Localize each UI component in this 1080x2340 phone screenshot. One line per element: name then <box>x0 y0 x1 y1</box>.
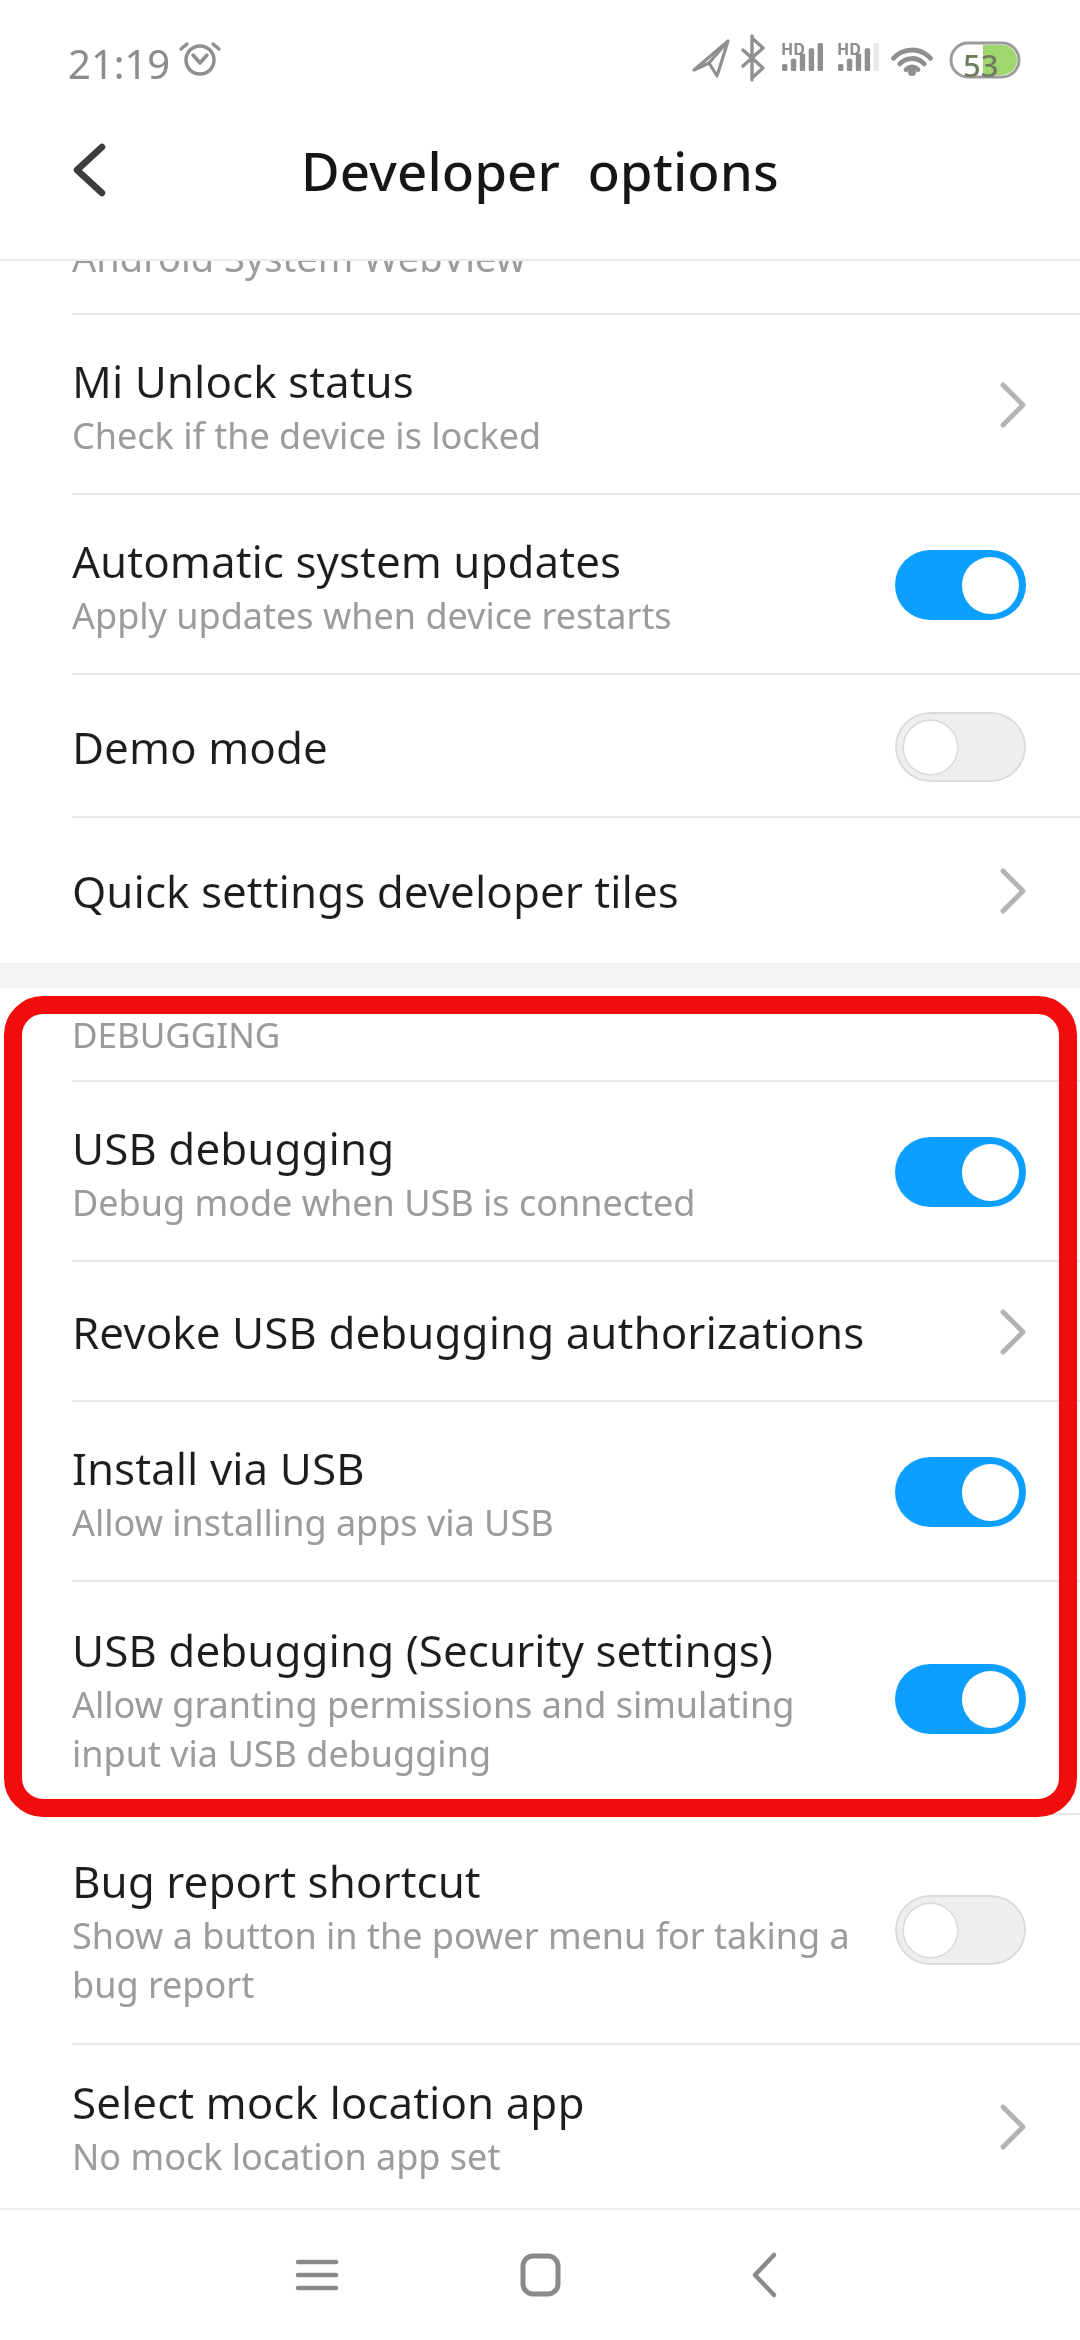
staticText: USB debugging <box>72 1118 395 1178</box>
button[interactable]: Automatic system updates <box>0 495 1080 675</box>
staticText: Allow installing apps via USB <box>72 1498 554 1547</box>
staticText: 21:19 <box>68 36 171 90</box>
staticText: Debug mode when USB is connected <box>72 1178 696 1227</box>
button[interactable] <box>720 2205 1080 2340</box>
staticText: HD <box>781 38 805 60</box>
staticText: bug report <box>72 1960 255 2009</box>
button[interactable]: USB debugging <box>0 1082 1080 1262</box>
staticText: Demo mode <box>72 717 328 777</box>
staticText: Automatic system updates <box>72 531 622 591</box>
staticText: Mi Unlock status <box>72 351 414 411</box>
button[interactable]: Mi Unlock status <box>0 315 1080 495</box>
staticText: No mock location app set <box>72 2132 501 2181</box>
staticText: USB debugging (Security settings) <box>72 1620 773 1680</box>
button[interactable]: Install via USB <box>0 1402 1080 1582</box>
button[interactable]: Select mock location app <box>0 2045 1080 2208</box>
staticText: 53 <box>963 44 999 86</box>
staticText: Developer options <box>301 134 779 206</box>
staticText: Apply updates when device restarts <box>72 591 672 640</box>
button[interactable]: Android System WebView <box>0 240 1080 315</box>
staticText: Bug report shortcut <box>72 1851 481 1911</box>
button[interactable] <box>72 144 106 196</box>
button[interactable] <box>0 2205 360 2340</box>
staticText: DEBUGGING <box>72 1011 281 1059</box>
staticText: Android System WebView <box>72 240 526 283</box>
staticText: Check if the device is locked <box>72 411 542 460</box>
staticText: Install via USB <box>72 1438 365 1498</box>
button[interactable]: Bug report shortcut <box>0 1815 1080 2045</box>
staticText: HD <box>837 38 861 60</box>
staticText: Quick settings developer tiles <box>72 861 679 921</box>
button[interactable] <box>360 2205 720 2340</box>
staticText: Allow granting permissions and simulatin… <box>72 1680 795 1729</box>
staticText: Revoke USB debugging authorizations <box>72 1302 865 1362</box>
button[interactable]: Revoke USB debugging authorizations <box>0 1262 1080 1402</box>
staticText: Show a button in the power menu for taki… <box>72 1911 850 1960</box>
button[interactable]: USB debugging (Security settings) <box>0 1582 1080 1815</box>
button[interactable]: Quick settings developer tiles <box>0 818 1080 963</box>
staticText: input via USB debugging <box>72 1729 492 1778</box>
staticText: Select mock location app <box>72 2072 585 2132</box>
button[interactable]: Demo mode <box>0 675 1080 818</box>
